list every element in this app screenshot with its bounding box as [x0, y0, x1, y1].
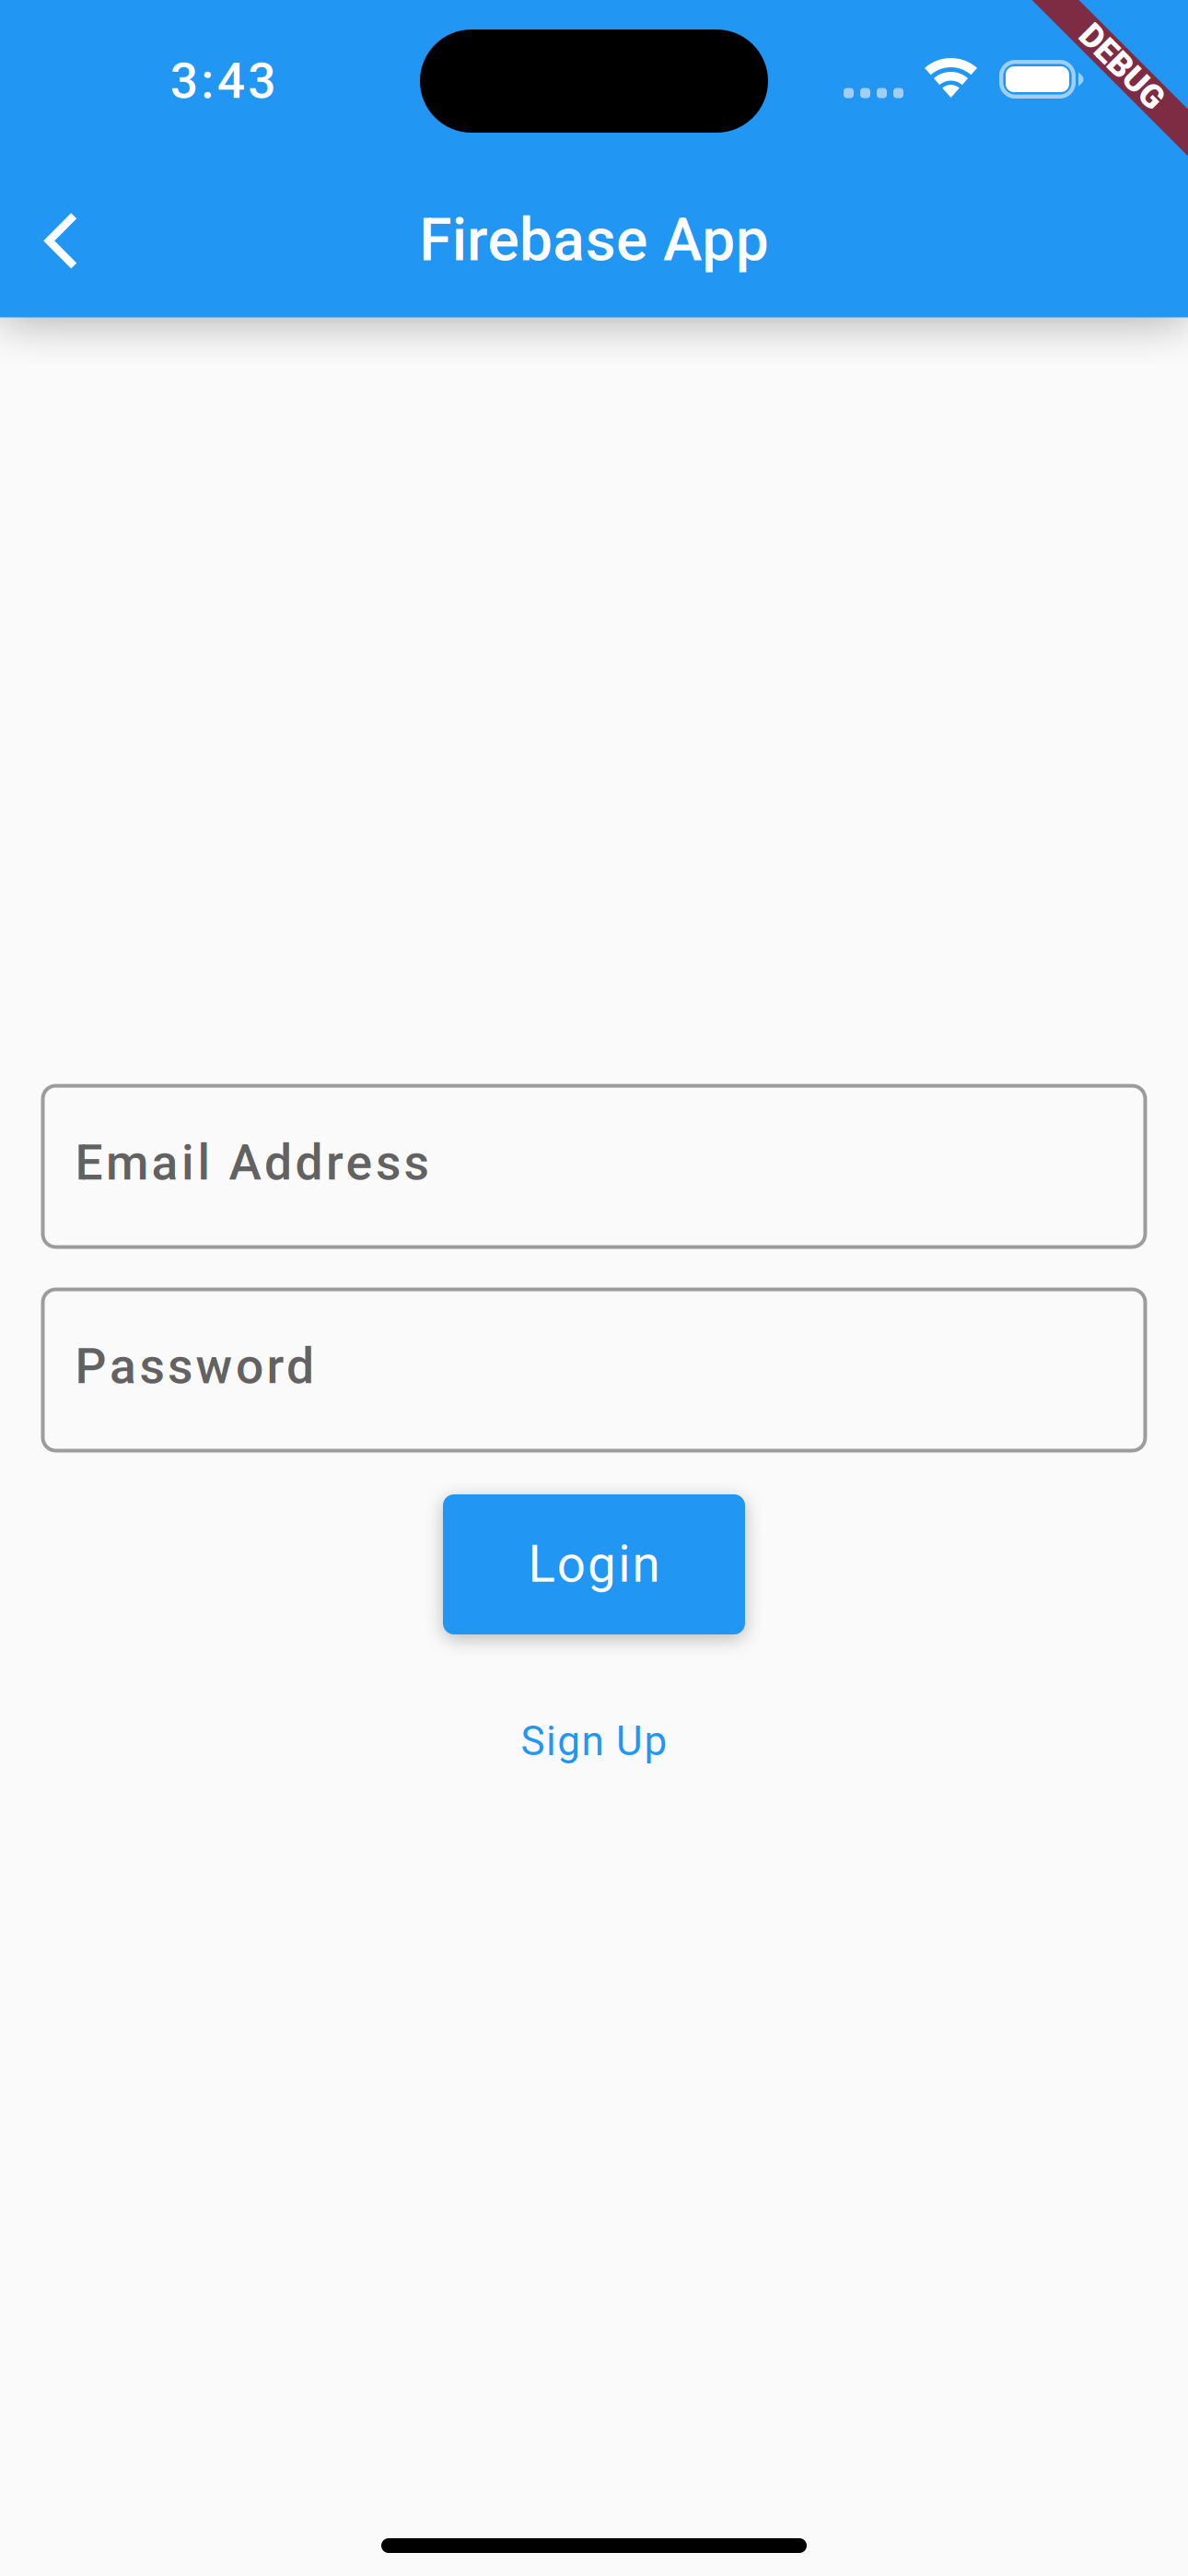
staticText: Login	[528, 1535, 660, 1594]
button[interactable]: Login	[443, 1494, 745, 1634]
staticText: Sign Up	[521, 1718, 667, 1765]
staticText: Password	[75, 1338, 314, 1395]
staticText: DEBUG	[1069, 47, 1175, 86]
button[interactable]: Sign Up	[521, 1718, 667, 1765]
staticText: Email Address	[75, 1134, 429, 1192]
button[interactable]: Back	[11, 190, 112, 292]
staticText: 3:43	[170, 52, 276, 110]
staticText: Firebase App	[419, 205, 769, 275]
